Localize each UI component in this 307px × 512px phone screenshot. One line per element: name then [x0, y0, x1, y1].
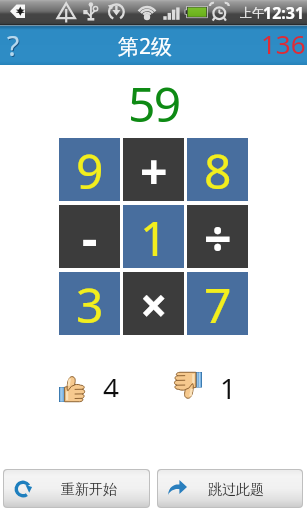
button[interactable]: Wrong answers 1	[173, 372, 233, 402]
staticText: 1	[220, 369, 237, 399]
button[interactable]: Skip	[158, 470, 302, 507]
other: Restart	[14, 480, 32, 498]
staticText: 9	[76, 138, 104, 201]
button[interactable]: 7	[187, 272, 248, 335]
button[interactable]: 9	[59, 138, 120, 201]
button[interactable]: Correct answers 4	[59, 374, 119, 402]
button[interactable]: Restart	[4, 470, 149, 507]
staticText: 重新开始	[61, 481, 117, 499]
staticText: ×	[140, 272, 168, 335]
staticText: +	[140, 138, 168, 201]
staticText: 8	[204, 138, 232, 201]
staticText: ÷	[204, 205, 232, 268]
staticText: 第2级	[118, 32, 173, 61]
staticText: 136	[261, 26, 306, 61]
button[interactable]: 1	[123, 205, 184, 268]
staticText: ?	[8, 27, 21, 65]
staticText: 1	[140, 205, 168, 268]
button[interactable]: Help	[0, 25, 28, 65]
button[interactable]: ÷	[187, 205, 248, 268]
staticText: ?	[7, 26, 20, 64]
staticText: 跳过此题	[208, 481, 264, 499]
button[interactable]: +	[123, 138, 184, 201]
staticText: 59	[128, 71, 180, 136]
button[interactable]: 8	[187, 138, 248, 201]
button[interactable]: 3	[59, 272, 120, 335]
staticText: 上午	[240, 5, 264, 20]
staticText: 4	[103, 369, 120, 397]
staticText: -	[82, 205, 98, 268]
staticText: 7	[204, 272, 232, 335]
staticText: 3	[76, 272, 104, 335]
button[interactable]: -	[59, 205, 120, 268]
other: Skip	[168, 480, 187, 495]
staticText: 12:31	[263, 2, 305, 24]
button[interactable]: ×	[123, 272, 184, 335]
